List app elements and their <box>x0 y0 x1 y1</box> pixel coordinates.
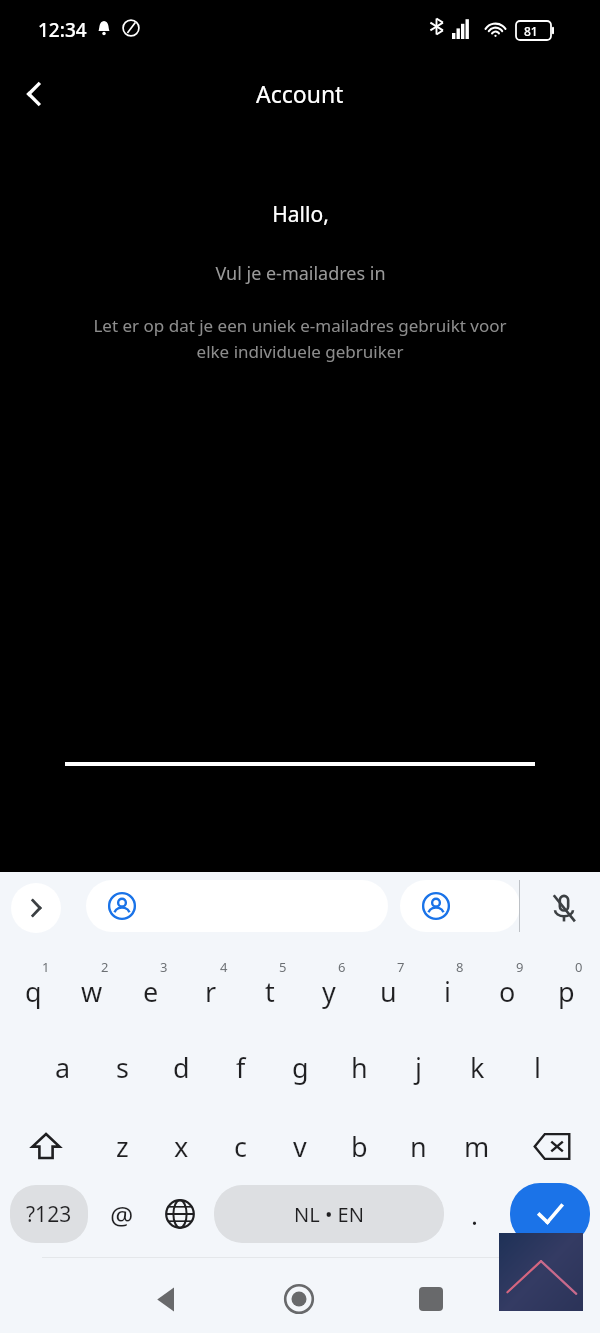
button[interactable]: Change language <box>152 1185 208 1243</box>
button[interactable]: Voice input off <box>535 879 593 937</box>
button[interactable]: s <box>93 1030 151 1104</box>
staticText: k <box>470 1049 485 1086</box>
staticText: x <box>174 1128 189 1165</box>
staticText: b <box>351 1128 368 1165</box>
button[interactable]: @ <box>94 1185 150 1243</box>
button[interactable]: o <box>478 950 536 1024</box>
staticText: 0 <box>575 958 583 976</box>
button[interactable]: . <box>450 1185 498 1243</box>
staticText: o <box>499 973 516 1010</box>
button[interactable]: f <box>212 1030 270 1104</box>
staticText: Hallo, <box>272 200 329 229</box>
button[interactable]: Back <box>135 1267 199 1331</box>
button[interactable]: b <box>330 1110 388 1182</box>
button[interactable]: Home <box>267 1267 331 1331</box>
staticText: q <box>25 973 42 1010</box>
button[interactable]: i <box>418 950 476 1024</box>
button[interactable]: d <box>152 1030 210 1104</box>
staticText: w <box>81 973 103 1010</box>
button[interactable]: q <box>4 950 62 1024</box>
button[interactable]: Back <box>6 66 62 122</box>
button[interactable]: c <box>211 1110 269 1182</box>
button[interactable]: y <box>300 950 358 1024</box>
button[interactable]: Shift <box>16 1110 76 1182</box>
button[interactable]: w <box>63 950 121 1024</box>
button[interactable]: Enter <box>510 1183 590 1245</box>
button[interactable]: t <box>241 950 299 1024</box>
staticText: h <box>351 1049 368 1086</box>
staticText: Vul je e-mailadres in <box>215 261 386 286</box>
staticText: y <box>322 973 336 1010</box>
staticText: Let er op dat je een uniek e-mailadres g… <box>30 314 570 363</box>
staticText: 6 <box>338 958 346 976</box>
button[interactable]: ?123 <box>10 1185 88 1243</box>
staticText: u <box>380 973 397 1010</box>
button[interactable]: z <box>93 1110 151 1182</box>
button[interactable]: e <box>122 950 180 1024</box>
button[interactable]: p <box>537 950 595 1024</box>
button[interactable]: NL • EN <box>214 1185 444 1243</box>
staticText: 9 <box>516 958 524 976</box>
staticText: 1 <box>42 958 50 976</box>
staticText: z <box>116 1128 129 1165</box>
staticText: e <box>143 973 159 1010</box>
staticText: . <box>471 1197 478 1232</box>
button[interactable]: g <box>271 1030 329 1104</box>
button[interactable]: a <box>34 1030 92 1104</box>
staticText: 3 <box>160 958 168 976</box>
staticText: s <box>116 1049 129 1086</box>
staticText: t <box>265 973 275 1010</box>
staticText: n <box>410 1128 427 1165</box>
staticText: i <box>444 973 451 1010</box>
staticText: l <box>534 1049 541 1086</box>
staticText: 5 <box>279 958 287 976</box>
staticText: f <box>236 1049 246 1086</box>
button[interactable]: l <box>508 1030 566 1104</box>
button[interactable]: r <box>182 950 240 1024</box>
button[interactable]: Overlay preview <box>499 1233 583 1311</box>
staticText: Account <box>256 78 344 109</box>
button[interactable]: Recent apps <box>399 1267 463 1331</box>
staticText: 12:34 <box>38 17 87 43</box>
staticText: 8 <box>456 958 464 976</box>
staticText: 4 <box>220 958 228 976</box>
button[interactable] <box>86 880 388 932</box>
staticText: c <box>234 1128 247 1165</box>
staticText: d <box>173 1049 190 1086</box>
staticText: NL • EN <box>294 1201 364 1228</box>
staticText: a <box>55 1049 71 1086</box>
staticText: 81 <box>524 23 538 39</box>
staticText: j <box>415 1049 422 1086</box>
staticText: r <box>205 973 217 1010</box>
button[interactable]: v <box>271 1110 329 1182</box>
staticText: 2 <box>101 958 109 976</box>
button[interactable]: u <box>359 950 417 1024</box>
staticText: ?123 <box>26 1200 72 1229</box>
button[interactable]: h <box>330 1030 388 1104</box>
button[interactable]: m <box>448 1110 506 1182</box>
button[interactable]: n <box>389 1110 447 1182</box>
button[interactable]: k <box>448 1030 506 1104</box>
staticText: 7 <box>397 958 405 976</box>
staticText: m <box>464 1128 490 1165</box>
button[interactable]: x <box>152 1110 210 1182</box>
staticText: @ <box>110 1197 134 1232</box>
button[interactable] <box>400 880 520 932</box>
staticText: v <box>293 1128 307 1165</box>
button[interactable]: Backspace <box>521 1110 583 1182</box>
button[interactable]: j <box>389 1030 447 1104</box>
staticText: p <box>558 973 575 1010</box>
staticText: g <box>292 1049 309 1086</box>
button[interactable]: More suggestions <box>11 883 61 933</box>
